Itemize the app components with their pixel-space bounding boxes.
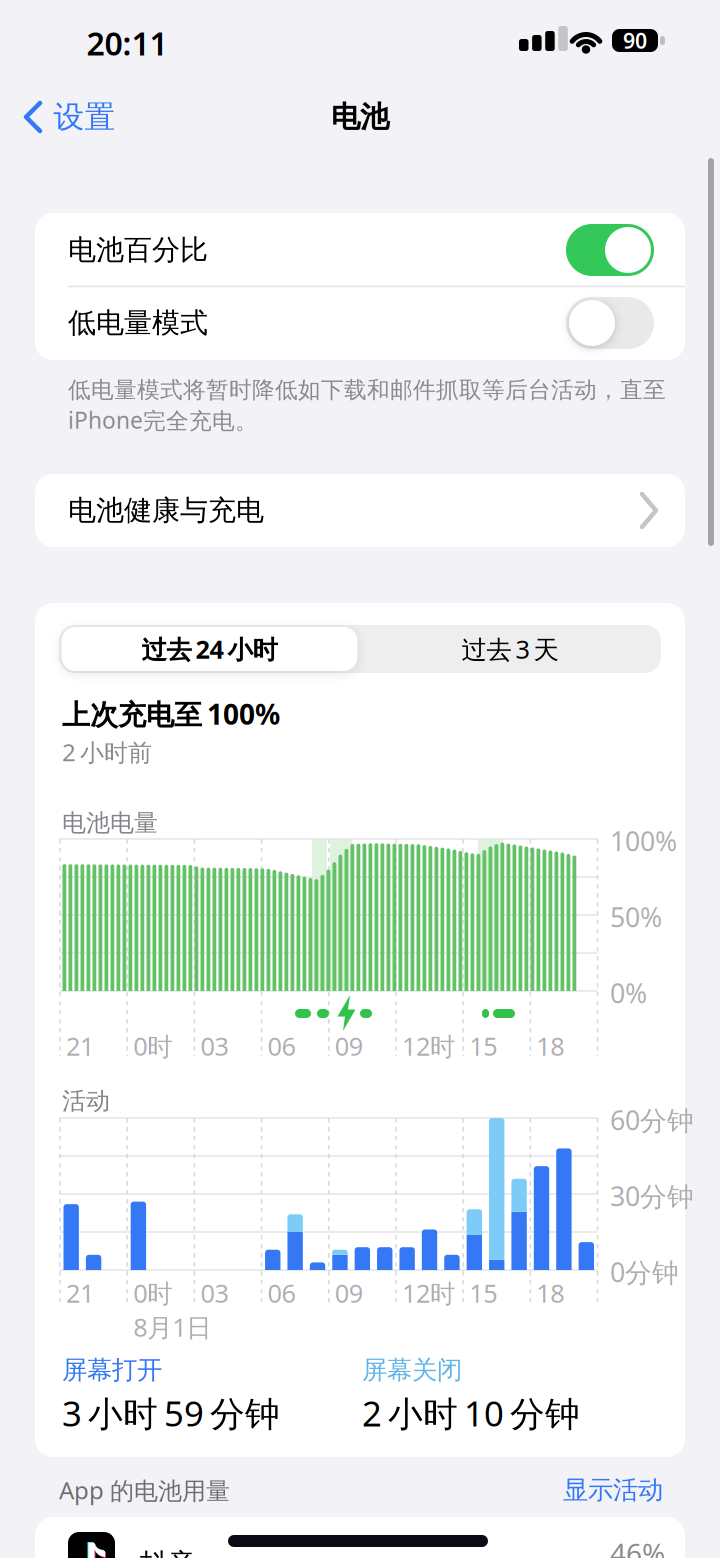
staticText: 50% <box>610 899 662 935</box>
staticText: 显示活动 <box>563 1474 663 1505</box>
staticText: 屏幕关闭 <box>362 1354 462 1385</box>
staticText: 03 <box>200 1276 228 1310</box>
staticText: 0分钟 <box>610 1254 679 1290</box>
staticText: 抖音 <box>140 1547 196 1558</box>
staticText: 2 小时前 <box>62 736 152 768</box>
staticText: 21 <box>66 1276 94 1310</box>
staticText: App 的电池用量 <box>59 1474 230 1506</box>
button[interactable]: 设置 <box>3 95 137 139</box>
staticText: 过去 3 天 <box>461 632 558 666</box>
staticText: 60分钟 <box>610 1102 694 1138</box>
staticText: 电池电量 <box>62 808 158 838</box>
staticText: 09 <box>335 1029 363 1063</box>
staticText: 18 <box>536 1029 564 1063</box>
staticText: 90 <box>623 26 647 55</box>
staticText: iPhone完全充电。 <box>68 405 258 435</box>
staticText: 0时 <box>133 1276 172 1310</box>
button[interactable]: 电池健康与充电 <box>35 474 685 547</box>
staticText: 3 小时 59 分钟 <box>62 1390 280 1436</box>
staticText: 屏幕打开 <box>62 1354 162 1385</box>
staticText: 电池健康与充电 <box>68 493 264 528</box>
staticText: 20:11 <box>86 22 167 64</box>
staticText: 电池百分比 <box>68 233 208 267</box>
staticText: 12时 <box>402 1276 455 1310</box>
staticText: 18 <box>536 1276 564 1310</box>
staticText: 设置 <box>53 98 115 136</box>
button[interactable]: 过去 24 小时 <box>61 627 357 671</box>
staticText: 09 <box>335 1276 363 1310</box>
staticText: 21 <box>66 1029 94 1063</box>
staticText: 06 <box>268 1276 296 1310</box>
staticText: 低电量模式将暂时降低如下载和邮件抓取等后台活动，直至 <box>68 376 666 404</box>
button[interactable]: 抖音 <box>35 1517 685 1558</box>
staticText: 上次充电至 100% <box>62 695 280 733</box>
button[interactable]: 显示活动 <box>543 1468 683 1512</box>
staticText: 0时 <box>133 1029 172 1063</box>
staticText: 15 <box>469 1029 497 1063</box>
staticText: 15 <box>469 1276 497 1310</box>
staticText: 12时 <box>402 1029 455 1063</box>
staticText: 46% <box>610 1534 665 1558</box>
staticText: 过去 24 小时 <box>141 632 277 666</box>
staticText: 30分钟 <box>610 1178 694 1214</box>
staticText: 低电量模式 <box>68 306 208 340</box>
staticText: 8月1日 <box>133 1310 211 1344</box>
staticText: 0% <box>610 975 647 1011</box>
staticText: 03 <box>200 1029 228 1063</box>
button[interactable]: 过去 3 天 <box>365 627 655 671</box>
button[interactable] <box>566 224 654 276</box>
staticText: 电池 <box>331 99 389 135</box>
button[interactable] <box>566 297 654 349</box>
staticText: 2 小时 10 分钟 <box>362 1390 580 1436</box>
staticText: 100% <box>610 823 677 859</box>
staticText: 06 <box>268 1029 296 1063</box>
staticText: 活动 <box>62 1086 110 1116</box>
